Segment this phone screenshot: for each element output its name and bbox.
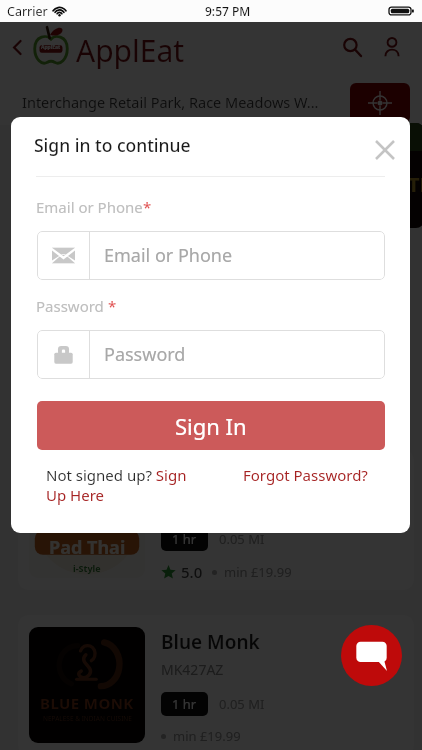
staticText: 9:57 PM [205, 3, 251, 19]
staticText: Sign in to continue [34, 133, 191, 157]
staticText: Carrier [7, 3, 48, 20]
staticText: 0.05 MI [219, 695, 265, 713]
staticText: Email or Phone [36, 197, 143, 217]
staticText: BLUE MONK [40, 693, 134, 713]
button[interactable]: Account [376, 31, 408, 63]
staticText: 0.05 MI [219, 530, 265, 548]
staticText: MK427AZ [161, 660, 224, 679]
staticText: min £19.99 [224, 563, 292, 581]
staticText: Blue Monk [161, 629, 260, 655]
button[interactable]: BLUE MONK [18, 615, 414, 750]
staticText: Password [104, 342, 186, 367]
button[interactable]: Sign In [37, 401, 385, 450]
staticText: 1 hr [172, 530, 197, 548]
button[interactable]: Not signed up? Sign Up Here [46, 465, 196, 505]
staticText: 1 hr [172, 695, 197, 713]
button[interactable]: Use my location [350, 83, 410, 123]
staticText: Forgot Password? [243, 465, 368, 485]
button[interactable]: Close [365, 130, 404, 169]
button[interactable]: Search [336, 31, 368, 63]
button[interactable]: TRY [12, 123, 422, 228]
staticText: Sign In [175, 411, 247, 441]
staticText: ApplEat [76, 30, 185, 71]
staticText: * [143, 197, 152, 217]
button[interactable]: Forgot Password? [243, 465, 368, 485]
staticText: * [108, 296, 117, 316]
staticText: NEPALESE & INDIAN CUISINE [43, 714, 132, 723]
staticText: min £19.99 [173, 727, 241, 745]
staticText: Pad Thai [49, 535, 126, 560]
staticText: ApplEat [41, 44, 61, 51]
staticText: Pad Thai [161, 464, 241, 490]
staticText: Email or Phone [104, 243, 233, 268]
staticText: Password [36, 296, 108, 316]
staticText: 5.0 [181, 562, 203, 582]
staticText: i-Style [73, 562, 101, 574]
button[interactable]: Chat [341, 625, 402, 686]
staticText: Interchange Retail Park, Race Meadows W.… [22, 92, 319, 112]
staticText: TRY [408, 171, 422, 198]
button[interactable]: Back [2, 32, 32, 62]
staticText: Not signed up? Sign Up Here [46, 465, 196, 505]
button[interactable]: Pad Thai [18, 450, 414, 590]
